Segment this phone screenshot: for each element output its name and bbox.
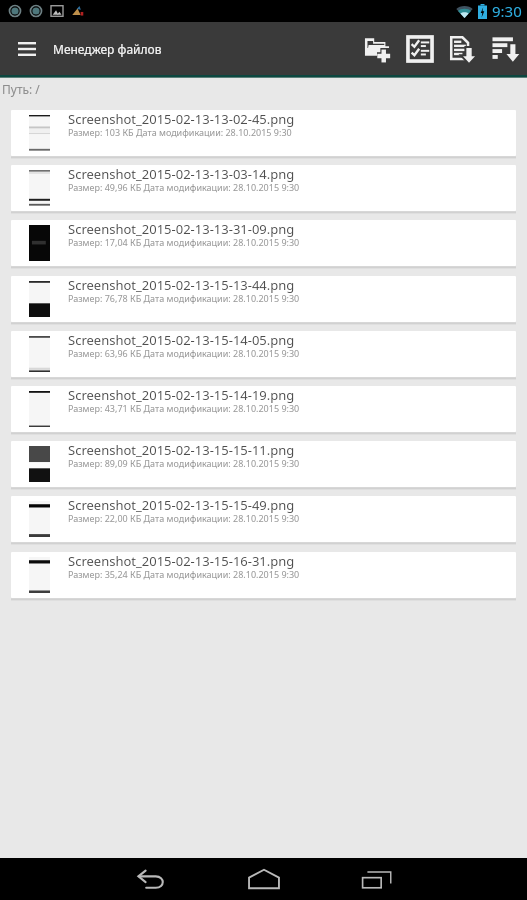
button[interactable]: Screenshot_2015-02-13-15-15-49.png (11, 496, 516, 542)
staticText: Размер: 43,71 КБ Дата модификации: 28.10… (68, 402, 300, 414)
staticText: Размер: 22,00 КБ Дата модификации: 28.10… (68, 512, 300, 524)
button[interactable]: Screenshot_2015-02-13-15-14-19.png (11, 386, 516, 432)
staticText: Размер: 89,09 КБ Дата модификации: 28.10… (68, 457, 300, 469)
staticText: Размер: 35,24 КБ Дата модификации: 28.10… (68, 568, 300, 580)
button[interactable]: Home (207, 858, 320, 900)
staticText: 9:30 (492, 1, 522, 21)
staticText: Размер: 17,04 КБ Дата модификации: 28.10… (68, 236, 300, 248)
button[interactable]: Screenshot_2015-02-13-15-15-11.png (11, 441, 516, 487)
button[interactable]: Menu (0, 22, 53, 75)
button[interactable]: Back (94, 858, 207, 900)
button[interactable]: Screenshot_2015-02-13-13-03-14.png (11, 165, 516, 211)
button[interactable]: New folder (355, 22, 398, 75)
staticText: Размер: 76,78 КБ Дата модификации: 28.10… (68, 292, 300, 304)
staticText: Screenshot_2015-02-13-13-02-45.png (68, 110, 295, 128)
button[interactable]: Screenshot_2015-02-13-15-14-05.png (11, 331, 516, 377)
staticText: Путь: / (2, 81, 40, 97)
staticText: Размер: 103 КБ Дата модификации: 28.10.2… (68, 126, 292, 138)
button[interactable]: Screenshot_2015-02-13-15-16-31.png (11, 552, 516, 598)
staticText: Screenshot_2015-02-13-13-31-09.png (68, 220, 295, 238)
staticText: Screenshot_2015-02-13-15-15-49.png (68, 496, 295, 514)
button[interactable]: Screenshot_2015-02-13-13-02-45.png (11, 110, 516, 156)
button[interactable]: Screenshot_2015-02-13-15-13-44.png (11, 276, 516, 322)
button[interactable]: Select items (398, 22, 441, 75)
staticText: Screenshot_2015-02-13-15-16-31.png (68, 552, 295, 570)
staticText: Менеджер файлов (53, 41, 162, 57)
staticText: Размер: 49,96 КБ Дата модификации: 28.10… (68, 181, 300, 193)
staticText: Screenshot_2015-02-13-13-03-14.png (68, 165, 295, 183)
staticText: Screenshot_2015-02-13-15-14-05.png (68, 331, 295, 349)
button[interactable]: Sort (484, 22, 527, 75)
button[interactable]: Recent apps (320, 858, 433, 900)
button[interactable]: Screenshot_2015-02-13-13-31-09.png (11, 220, 516, 266)
staticText: Screenshot_2015-02-13-15-15-11.png (68, 441, 295, 459)
staticText: Размер: 63,96 КБ Дата модификации: 28.10… (68, 347, 300, 359)
staticText: Screenshot_2015-02-13-15-14-19.png (68, 386, 295, 404)
staticText: Screenshot_2015-02-13-15-13-44.png (68, 276, 295, 294)
button[interactable]: Paste (441, 22, 484, 75)
